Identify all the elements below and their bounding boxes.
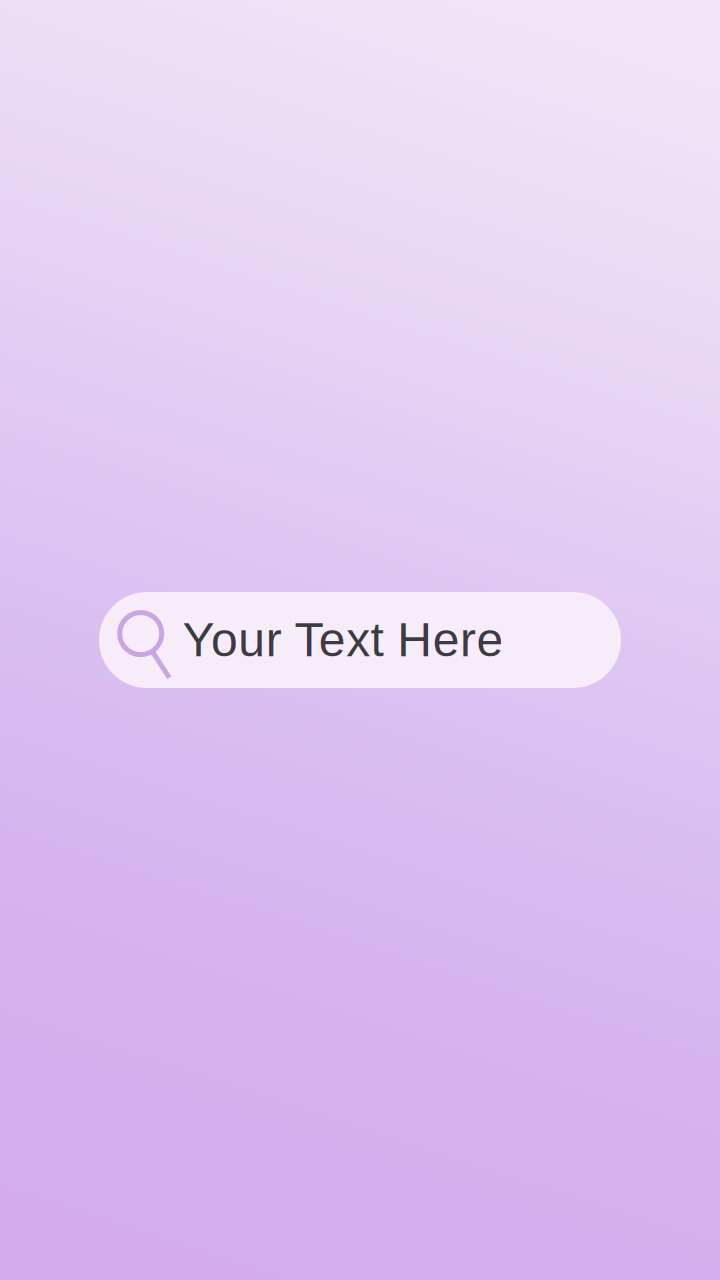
- staticText: Your Text Here: [182, 613, 503, 666]
- button[interactable]: Your Text Here: [99, 592, 621, 688]
